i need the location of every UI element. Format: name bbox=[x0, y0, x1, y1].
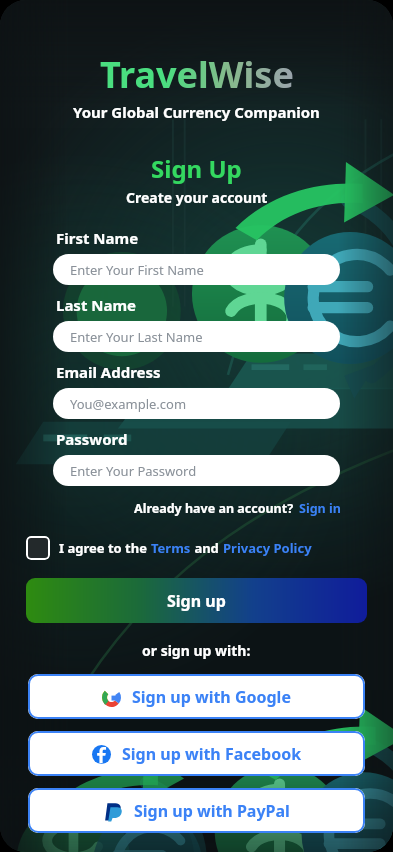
staticText: Sign in bbox=[299, 500, 341, 517]
staticText: Sign up with PayPal bbox=[134, 800, 290, 822]
staticText: TravelWise bbox=[100, 50, 294, 99]
staticText: Enter Your Last Name bbox=[70, 328, 203, 346]
button[interactable]: You@example.com bbox=[53, 388, 340, 419]
staticText: Enter Your Password bbox=[70, 462, 197, 480]
staticText: Terms bbox=[151, 539, 191, 557]
staticText: and bbox=[191, 539, 223, 557]
staticText: You@example.com bbox=[70, 395, 187, 413]
button[interactable]: Enter Your First Name bbox=[53, 254, 340, 285]
staticText: Your Global Currency Companion bbox=[73, 102, 320, 122]
staticText: Sign up bbox=[167, 590, 226, 612]
staticText: I agree to the bbox=[59, 539, 151, 557]
staticText: Sign up with Google bbox=[132, 686, 291, 708]
button[interactable]: Enter Your Password bbox=[53, 455, 340, 486]
staticText: Create your account bbox=[126, 188, 268, 207]
button[interactable]: Privacy Policy bbox=[223, 539, 312, 557]
staticText: First Name bbox=[56, 228, 139, 248]
staticText: Privacy Policy bbox=[223, 539, 312, 557]
button[interactable]: Sign up with Facebook bbox=[28, 731, 365, 776]
staticText: Already have an account? bbox=[134, 500, 294, 517]
button[interactable]: Enter Your Last Name bbox=[53, 321, 340, 352]
staticText: Last Name bbox=[56, 295, 137, 315]
staticText: or sign up with: bbox=[142, 641, 251, 660]
staticText: Enter Your First Name bbox=[70, 261, 204, 279]
button[interactable]: Sign up bbox=[26, 578, 367, 623]
staticText: Email Address bbox=[56, 362, 161, 382]
staticText: Sign up with Facebook bbox=[122, 743, 302, 765]
button[interactable]: Sign up with Google bbox=[28, 674, 365, 719]
button[interactable]: Terms bbox=[151, 539, 191, 557]
staticText: Password bbox=[56, 429, 128, 449]
button[interactable]: Sign in bbox=[299, 500, 341, 517]
staticText: Sign Up bbox=[151, 152, 242, 185]
button[interactable]: Agree to terms bbox=[26, 536, 50, 560]
button[interactable]: Sign up with PayPal bbox=[28, 788, 365, 833]
